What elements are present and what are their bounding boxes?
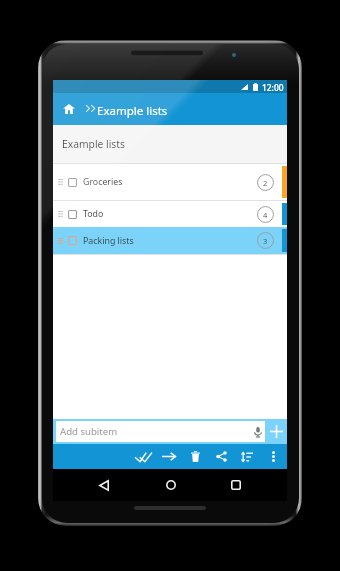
button[interactable]: Sort [234, 444, 260, 469]
staticText: 4 [263, 210, 268, 220]
button[interactable]: Check Groceries [53, 164, 287, 200]
staticText: Groceries [83, 176, 123, 188]
staticText: 12:00 [262, 82, 284, 93]
button[interactable]: Home [57, 93, 81, 125]
button[interactable]: Check Todo [68, 210, 77, 219]
button[interactable]: Home [156, 469, 186, 501]
button[interactable]: Share [208, 444, 234, 469]
button[interactable]: Add subitem [56, 421, 265, 442]
button[interactable]: Recent apps [221, 469, 251, 501]
button[interactable]: Move [156, 444, 182, 469]
staticText: Example lists [62, 137, 125, 151]
button[interactable]: Check Packing lists [53, 227, 287, 254]
button[interactable]: Check Packing lists [68, 236, 77, 245]
button[interactable]: Delete [182, 444, 208, 469]
staticText: 3 [263, 236, 268, 246]
button[interactable]: Check Todo [53, 201, 287, 227]
button[interactable]: Check Groceries [68, 178, 77, 187]
staticText: Example lists [97, 103, 168, 119]
button[interactable]: More options [260, 444, 286, 469]
staticText: Packing lists [83, 235, 134, 247]
button[interactable]: Voice input [251, 425, 265, 439]
button[interactable]: Back [89, 469, 119, 501]
staticText: 2 [263, 178, 268, 188]
button[interactable]: Add [265, 419, 287, 444]
staticText: Todo [83, 208, 104, 220]
button[interactable]: Mark done [130, 444, 156, 469]
staticText: Add subitem [60, 425, 251, 438]
